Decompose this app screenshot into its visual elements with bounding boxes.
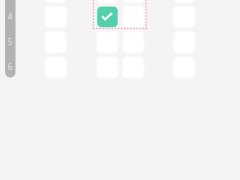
staticText: 5 xyxy=(8,36,13,47)
button[interactable]: Selected cell xyxy=(97,7,118,27)
staticText: 4 xyxy=(8,11,13,22)
staticText: 6 xyxy=(8,62,13,72)
